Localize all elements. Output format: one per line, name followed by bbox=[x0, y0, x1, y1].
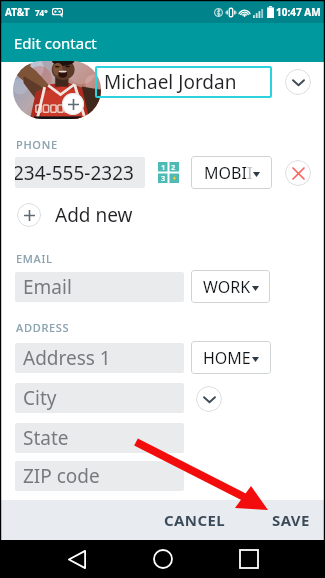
staticText: Add new bbox=[55, 202, 133, 228]
staticText: 3 bbox=[161, 173, 166, 183]
button[interactable]: State bbox=[15, 423, 184, 453]
staticText: WORK bbox=[203, 276, 251, 298]
staticText: ZIP code bbox=[23, 463, 100, 489]
button[interactable]: Email bbox=[15, 272, 184, 302]
staticText: Email bbox=[23, 274, 72, 300]
staticText: 2 bbox=[171, 162, 176, 172]
button[interactable]: Expand name bbox=[285, 69, 311, 95]
staticText: CANCEL bbox=[164, 510, 226, 530]
button[interactable]: 234-555-2323 bbox=[15, 157, 145, 188]
staticText: HOME bbox=[203, 347, 251, 369]
staticText: 10:47 AM bbox=[276, 5, 321, 19]
button[interactable]: Recents bbox=[229, 540, 269, 578]
staticText: Address 1 bbox=[23, 345, 111, 371]
staticText: I bbox=[247, 162, 253, 184]
staticText: SAVE bbox=[272, 510, 310, 530]
staticText: PHONE bbox=[16, 137, 58, 152]
staticText: Edit contact bbox=[14, 33, 97, 53]
button[interactable]: Add new bbox=[0, 200, 325, 230]
button[interactable]: Expand address bbox=[196, 386, 222, 412]
staticText: EMAIL bbox=[16, 251, 53, 266]
button[interactable]: Home bbox=[143, 540, 183, 578]
button[interactable]: Keypad bbox=[158, 162, 179, 183]
button[interactable]: CANCEL bbox=[154, 500, 236, 540]
button[interactable]: Address 1 bbox=[15, 343, 184, 373]
staticText: 74° bbox=[35, 7, 48, 18]
staticText: AT&T bbox=[5, 5, 30, 19]
button[interactable]: HOME bbox=[191, 341, 271, 374]
staticText: 234-555-2323 bbox=[15, 160, 134, 186]
button[interactable]: SAVE bbox=[262, 500, 324, 540]
button[interactable]: WORK bbox=[191, 270, 270, 303]
staticText: Michael Jordan bbox=[104, 69, 237, 95]
staticText: MOBI bbox=[204, 162, 247, 184]
button[interactable]: Change photo bbox=[62, 93, 84, 115]
staticText: City bbox=[23, 385, 57, 411]
button[interactable]: MOBI bbox=[191, 156, 272, 189]
button[interactable]: ZIP code bbox=[15, 461, 184, 491]
button[interactable]: Back bbox=[57, 540, 97, 578]
staticText: 1 bbox=[161, 162, 166, 172]
staticText: State bbox=[23, 425, 69, 451]
button[interactable]: Michael Jordan bbox=[95, 66, 272, 98]
staticText: ADDRESS bbox=[16, 320, 70, 335]
button[interactable]: Remove phone bbox=[285, 160, 311, 186]
button[interactable]: City bbox=[15, 383, 184, 413]
